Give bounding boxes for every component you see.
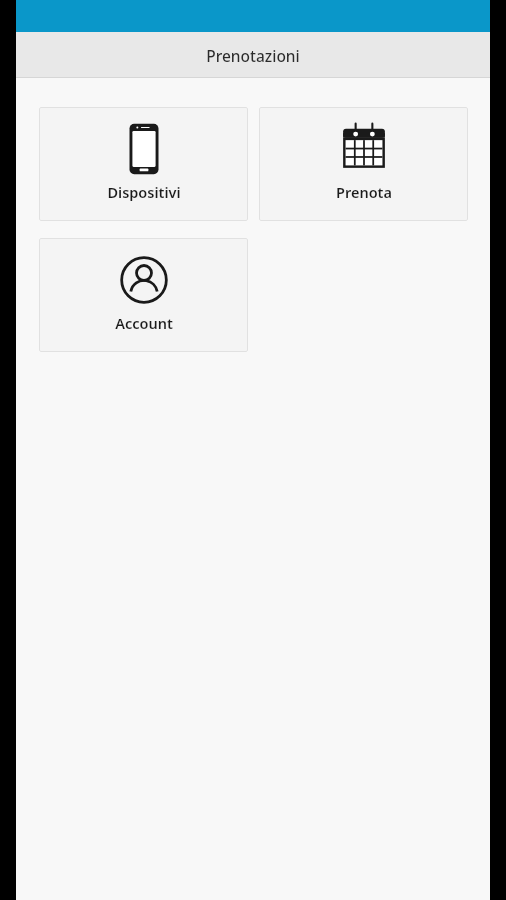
staticText: Prenota [336,182,392,202]
button[interactable]: Account [39,238,248,352]
staticText: Account [115,313,173,333]
other: Prenota [335,120,393,178]
staticText: Dispositivi [107,182,181,202]
staticText: Prenotazioni [206,45,300,66]
other: Dispositivi [115,120,173,178]
button[interactable]: Dispositivi [39,107,248,221]
other: Account [115,251,173,309]
button[interactable]: Prenota [259,107,468,221]
